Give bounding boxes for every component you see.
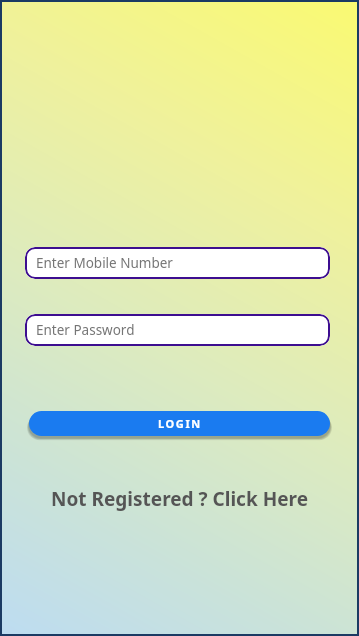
staticText: Enter Mobile Number xyxy=(36,254,173,272)
staticText: LOGIN xyxy=(158,416,202,431)
button[interactable]: LOGIN xyxy=(29,411,330,436)
button[interactable]: Not Registered ? Click Here xyxy=(2,486,357,512)
staticText: Not Registered ? Click Here xyxy=(51,486,308,512)
button[interactable]: Enter Mobile Number xyxy=(25,247,330,279)
staticText: Enter Password xyxy=(36,321,135,339)
button[interactable]: Enter Password xyxy=(25,314,330,346)
